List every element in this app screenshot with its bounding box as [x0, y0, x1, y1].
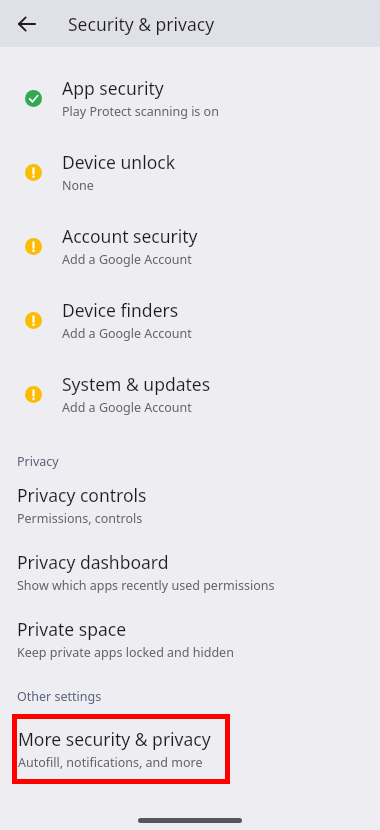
staticText: Add a Google Account [62, 399, 192, 416]
button[interactable]: App security [0, 61, 380, 135]
staticText: Security & privacy [68, 12, 215, 36]
staticText: Account security [62, 224, 198, 248]
button[interactable]: System & updates [0, 357, 380, 431]
button[interactable]: Private space [0, 617, 380, 661]
staticText: Show which apps recently used permission… [17, 577, 275, 594]
button[interactable]: Device finders [0, 283, 380, 357]
staticText: App security [62, 76, 164, 100]
staticText: Privacy controls [17, 483, 147, 507]
staticText: Autofill, notifications, and more [18, 754, 203, 771]
staticText: More security & privacy [18, 727, 211, 751]
button[interactable]: Privacy controls [0, 483, 380, 527]
staticText: Private space [17, 617, 127, 641]
staticText: Permissions, controls [17, 510, 143, 527]
button[interactable]: Privacy dashboard [0, 550, 380, 594]
button[interactable]: Account security [0, 209, 380, 283]
staticText: Keep private apps locked and hidden [17, 644, 234, 661]
staticText: Other settings [17, 688, 102, 705]
staticText: Privacy [17, 453, 59, 470]
staticText: System & updates [62, 372, 211, 396]
staticText: None [62, 177, 94, 194]
button[interactable]: Back [9, 6, 45, 42]
staticText: Play Protect scanning is on [62, 103, 219, 120]
button[interactable]: More security & privacy [12, 714, 230, 784]
staticText: Device unlock [62, 150, 175, 174]
button[interactable]: Device unlock [0, 135, 380, 209]
staticText: Device finders [62, 298, 179, 322]
staticText: Privacy dashboard [17, 550, 169, 574]
staticText: Add a Google Account [62, 325, 192, 342]
staticText: Add a Google Account [62, 251, 192, 268]
